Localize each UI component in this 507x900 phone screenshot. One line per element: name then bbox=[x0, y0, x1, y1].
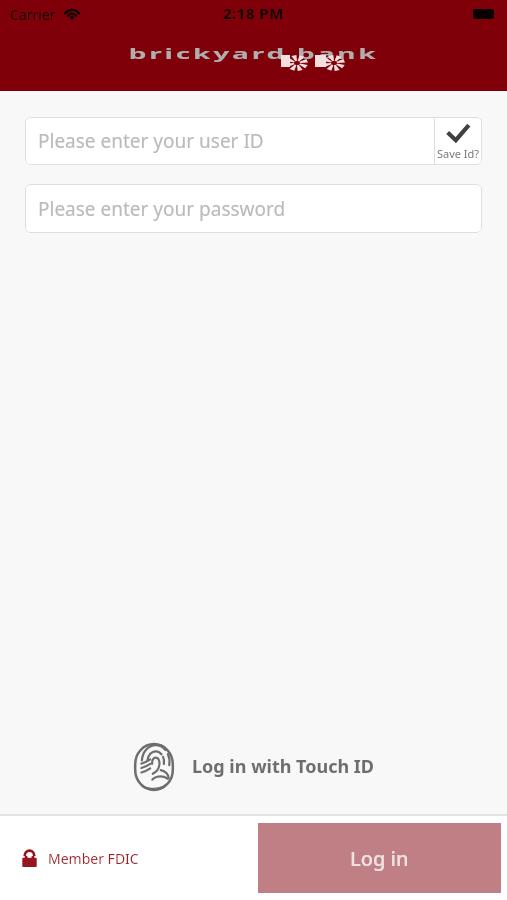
staticText: Save Id? bbox=[437, 146, 480, 161]
staticText: Member FDIC bbox=[48, 849, 139, 868]
button[interactable]: Save Id? bbox=[434, 117, 482, 165]
button[interactable]: Please enter your password bbox=[25, 184, 482, 233]
button[interactable]: Log in with Touch ID bbox=[0, 731, 507, 803]
button[interactable]: Please enter your user ID bbox=[25, 117, 434, 165]
staticText: 2:18 PM bbox=[223, 3, 284, 23]
staticText: Carrier bbox=[10, 5, 56, 24]
other: Log in with Touch ID bbox=[133, 741, 175, 793]
staticText: Please enter your user ID bbox=[38, 128, 264, 154]
staticText: brickyard bank bbox=[129, 43, 379, 63]
staticText: Log in bbox=[350, 845, 409, 872]
staticText: Please enter your password bbox=[38, 196, 286, 222]
staticText: Log in with Touch ID bbox=[192, 754, 375, 779]
button[interactable]: Member FDIC bbox=[18, 845, 143, 872]
button[interactable]: Log in bbox=[258, 823, 501, 893]
